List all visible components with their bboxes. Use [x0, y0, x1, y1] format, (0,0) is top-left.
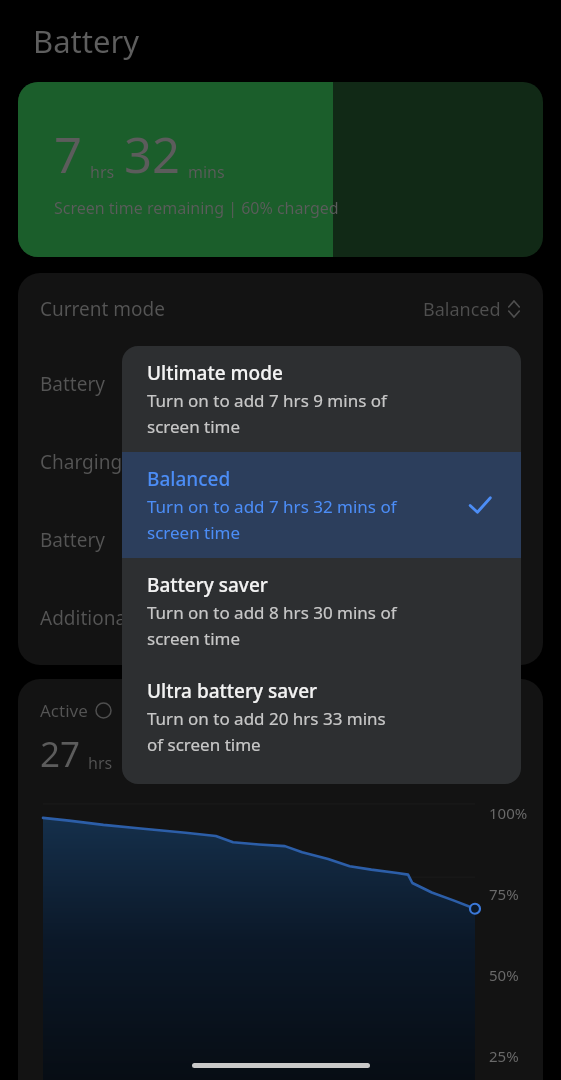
- staticText: Ultimate mode: [147, 360, 283, 386]
- staticText: Additional: [40, 605, 131, 631]
- staticText: Active: [40, 699, 88, 722]
- staticText: 50%: [489, 965, 519, 985]
- staticText: Turn on to add 8 hrs 30 mins of screen t…: [147, 601, 397, 650]
- staticText: Ultra battery saver: [147, 678, 318, 704]
- staticText: hrs: [88, 752, 113, 774]
- button[interactable]: Balanced: [122, 452, 521, 558]
- other: Help: [95, 702, 112, 719]
- staticText: Turn on to add 7 hrs 32 mins of screen t…: [147, 495, 397, 544]
- button[interactable]: Battery: [18, 345, 543, 423]
- staticText: Charging: [40, 449, 123, 475]
- staticText: 27: [40, 730, 81, 778]
- staticText: Battery: [40, 371, 105, 397]
- button[interactable]: Ultimate mode: [122, 346, 521, 452]
- other: Selected: [467, 492, 493, 518]
- staticText: 25%: [489, 1046, 519, 1066]
- staticText: mins: [188, 161, 225, 183]
- staticText: 7: [54, 121, 83, 188]
- staticText: Battery saver: [147, 572, 268, 598]
- button[interactable]: Additional: [18, 579, 543, 657]
- button[interactable]: Current mode: [18, 273, 543, 345]
- staticText: Current mode: [40, 296, 165, 322]
- other: Change mode: [507, 299, 521, 319]
- staticText: Turn on to add 7 hrs 9 mins of screen ti…: [147, 389, 387, 438]
- staticText: Turn on to add 20 hrs 33 mins of screen …: [147, 707, 386, 756]
- staticText: Balanced: [423, 297, 501, 322]
- staticText: Battery: [40, 527, 105, 553]
- button[interactable]: Battery: [18, 501, 543, 579]
- staticText: 32: [124, 121, 181, 188]
- staticText: Balanced: [147, 466, 231, 492]
- staticText: hrs: [90, 161, 115, 183]
- button[interactable]: Ultra battery saver: [122, 664, 521, 770]
- staticText: Battery: [33, 20, 140, 62]
- button[interactable]: Charging: [18, 423, 543, 501]
- staticText: Screen time remaining | 60% charged: [54, 197, 339, 219]
- staticText: 100%: [489, 803, 528, 823]
- button[interactable]: 7: [18, 82, 543, 257]
- button[interactable]: Battery saver: [122, 558, 521, 664]
- staticText: 75%: [489, 884, 519, 904]
